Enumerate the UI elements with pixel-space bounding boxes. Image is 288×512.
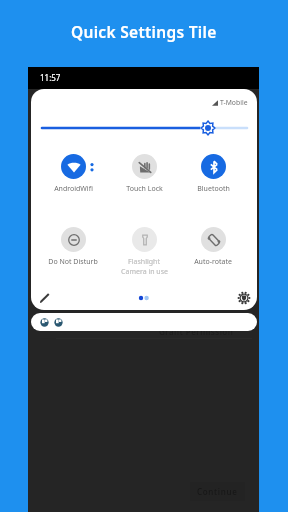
staticText: Touch Lock [126,184,163,194]
staticText: Grant Permission [159,326,234,337]
button[interactable]: Settings [237,291,251,305]
staticText: Do Not Disturb [48,257,98,267]
staticText: Quick Settings Tile [71,21,217,42]
button[interactable]: Touch Lock [109,154,179,194]
button[interactable]: Do Not Disturb [38,227,108,267]
staticText: Continue [197,486,238,497]
button[interactable]: Auto-rotate [178,227,248,267]
staticText: Bluetooth [197,184,230,194]
staticText: Camera in use [121,267,168,277]
staticText: 11:57 [40,72,61,83]
staticText: AndroidWifi [54,184,93,194]
staticText: Flashlight [128,257,160,267]
button[interactable]: Flashlight [109,227,179,277]
button[interactable]: Bluetooth [178,154,248,194]
staticText: Auto-rotate [194,257,232,267]
button[interactable]: App shortcut [40,318,49,327]
staticText: T-Mobile [220,98,248,107]
button[interactable]: App shortcut [54,318,63,327]
button[interactable]: Edit tiles [38,291,52,305]
button[interactable]: AndroidWifi [38,154,108,194]
